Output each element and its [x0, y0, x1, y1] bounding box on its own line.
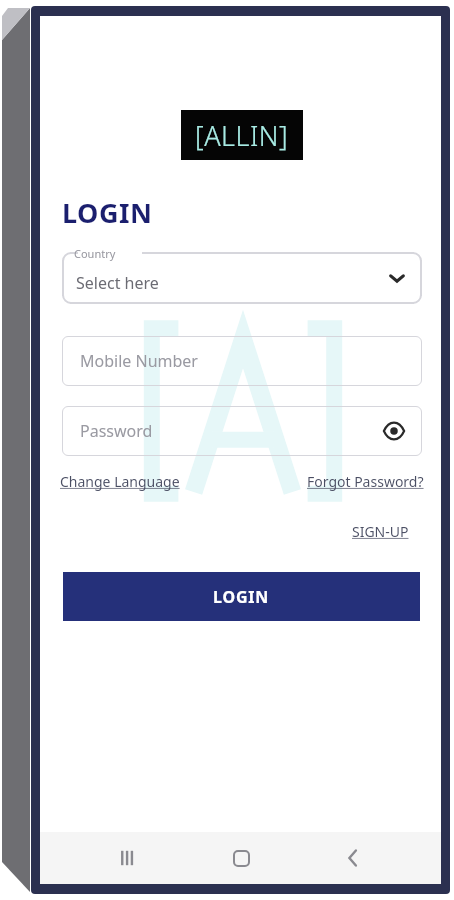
button[interactable]: Country — [62, 252, 422, 304]
staticText: LOGIN — [62, 194, 153, 231]
staticText: Password — [80, 420, 153, 442]
button[interactable]: Show password — [378, 415, 410, 447]
other: Open country list — [388, 269, 406, 287]
staticText: Change Language — [60, 472, 180, 491]
staticText: Mobile Number — [80, 350, 198, 372]
button[interactable]: LOGIN — [63, 572, 420, 621]
staticText: LOGIN — [213, 586, 270, 608]
button[interactable]: Back — [329, 834, 377, 882]
button[interactable]: Change Language — [60, 468, 180, 494]
staticText: SIGN-UP — [352, 522, 409, 541]
button[interactable]: Password — [62, 406, 422, 456]
button[interactable]: Forgot Password? — [307, 468, 424, 494]
button[interactable]: Home — [217, 834, 265, 882]
button[interactable]: Recent apps — [104, 834, 152, 882]
button[interactable]: SIGN-UP — [352, 518, 409, 544]
button[interactable]: Mobile Number — [62, 336, 422, 386]
staticText: [ALLIN] — [195, 117, 289, 154]
staticText: Select here — [76, 272, 159, 294]
staticText: Forgot Password? — [307, 472, 424, 491]
staticText: Country — [74, 246, 116, 261]
